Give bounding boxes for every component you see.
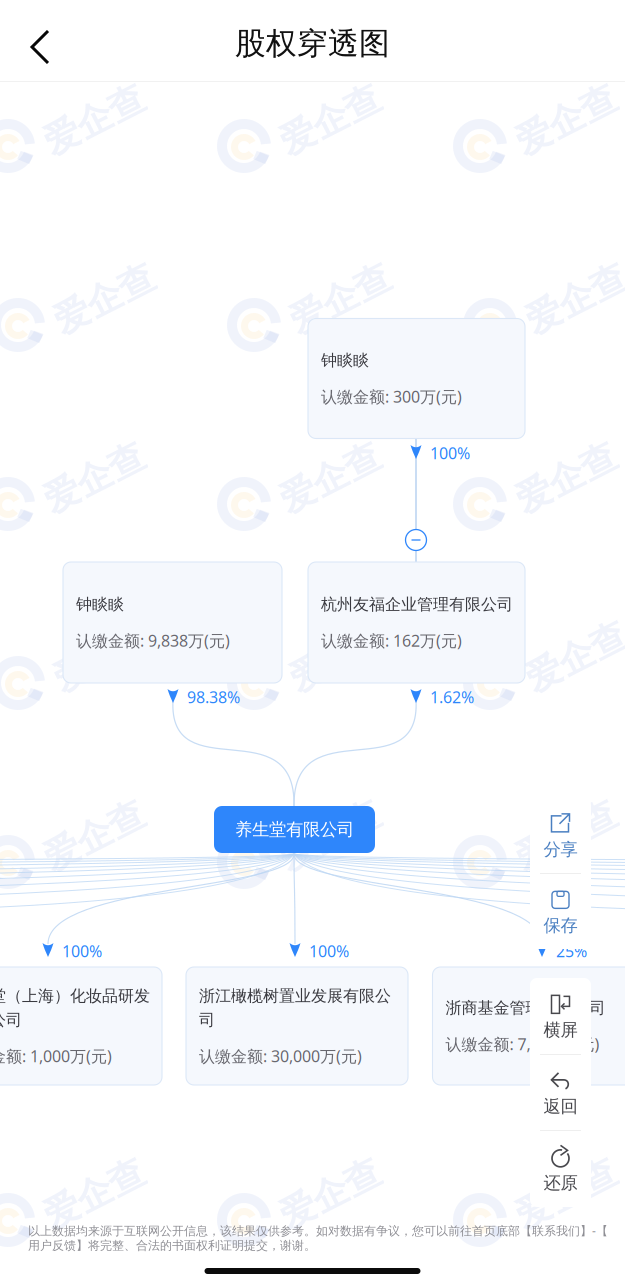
staticText: 以上数据均来源于互联网公开信息，该结果仅供参考。如对数据有争议，您可以前往首页底… — [28, 1222, 608, 1238]
staticText: 养生堂（上海）化妆品研发 — [0, 986, 150, 1006]
staticText: 返回 — [543, 1096, 577, 1117]
staticText: 浙商基金管理有限公司 — [445, 998, 605, 1018]
staticText: 爱企查 — [50, 635, 158, 679]
button[interactable]: 还原 — [530, 1131, 591, 1207]
staticText: 爱企查 — [512, 814, 620, 858]
staticText: 杭州友福企业管理有限公司 — [321, 595, 513, 614]
staticText: 爱企查 — [512, 1172, 620, 1216]
staticText: 爱企查 — [50, 993, 158, 1037]
button[interactable]: 养生堂有限公司 — [214, 806, 375, 853]
staticText: 爱企查 — [276, 98, 384, 142]
staticText: 爱企查 — [40, 98, 148, 142]
button[interactable]: 横屏 — [530, 978, 591, 1054]
staticText: 爱企查 — [40, 814, 148, 858]
staticText: 认缴金额: 300万(元) — [321, 386, 462, 407]
staticText: 有限公司 — [0, 1010, 22, 1030]
staticText: 爱企查 — [286, 635, 394, 679]
staticText: 爱企查 — [40, 1172, 148, 1216]
staticText: 认缴金额: 162万(元) — [321, 630, 462, 651]
staticText: 认缴金额: 30,000万(元) — [199, 1045, 362, 1067]
staticText: 爱企查 — [522, 277, 625, 321]
button[interactable]: 分享 — [530, 798, 591, 873]
staticText: 爱企查 — [286, 277, 394, 321]
staticText: 100% — [309, 940, 349, 962]
staticText: 100% — [62, 940, 102, 962]
staticText: 认缴金额: 1,000万(元) — [0, 1045, 112, 1067]
staticText: 还原 — [543, 1172, 577, 1194]
staticText: 横屏 — [543, 1019, 577, 1041]
staticText: 爱企查 — [512, 98, 620, 142]
staticText: 25% — [556, 940, 587, 962]
staticText: 爱企查 — [276, 456, 384, 500]
staticText: 爱企查 — [286, 993, 394, 1037]
staticText: 保存 — [543, 915, 577, 936]
staticText: 100% — [430, 442, 470, 464]
staticText: 98.38% — [187, 686, 240, 708]
staticText: 股权穿透图 — [235, 25, 390, 62]
staticText: 认缴金额: 9,838万(元) — [76, 630, 230, 651]
staticText: 认缴金额: 7,000万(元) — [445, 1033, 599, 1055]
staticText: 爱企查 — [50, 277, 158, 321]
button[interactable]: 保存 — [530, 874, 591, 949]
staticText: 爱企查 — [276, 814, 384, 858]
button[interactable]: 返回 — [23, 23, 57, 71]
button[interactable]: 返回 — [530, 1055, 591, 1130]
staticText: 司 — [199, 1010, 215, 1030]
staticText: 钟睒睒 — [321, 351, 369, 370]
staticText: 分享 — [543, 839, 577, 860]
button[interactable]: 收起 — [403, 527, 429, 553]
staticText: 浙江橄榄树置业发展有限公 — [199, 986, 391, 1006]
staticText: 爱企查 — [512, 456, 620, 500]
staticText: 爱企查 — [276, 1172, 384, 1216]
staticText: 爱企查 — [522, 993, 625, 1037]
staticText: 1.62% — [430, 686, 474, 708]
staticText: 养生堂有限公司 — [235, 819, 354, 840]
staticText: 钟睒睒 — [76, 595, 124, 614]
staticText: 用户反馈】将完整、合法的书面权利证明提交，谢谢。 — [28, 1238, 316, 1253]
staticText: 爱企查 — [40, 456, 148, 500]
staticText: 爱企查 — [522, 635, 625, 679]
